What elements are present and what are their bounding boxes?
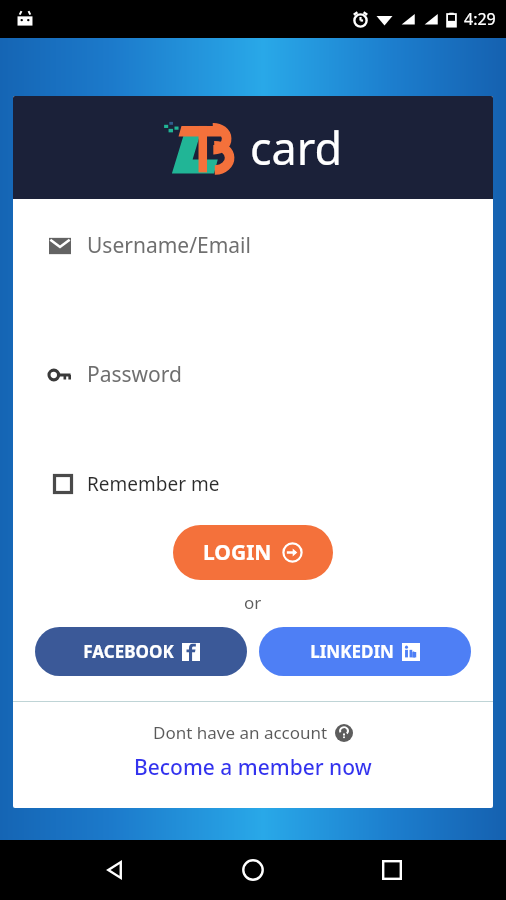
staticText: Username/Email: [87, 231, 251, 260]
button[interactable]: Recent apps: [368, 846, 416, 894]
button[interactable]: Password: [13, 356, 493, 393]
button[interactable]: Become a member now: [126, 751, 380, 784]
staticText: LINKEDIN: [310, 640, 394, 663]
staticText: Dont have an account: [153, 721, 328, 744]
button[interactable]: LINKEDIN: [259, 627, 471, 676]
button[interactable]: LOGIN: [173, 525, 333, 580]
staticText: Remember me: [87, 471, 220, 497]
staticText: FACEBOOK: [83, 640, 174, 663]
staticText: LOGIN: [203, 538, 272, 567]
staticText: 4:29: [464, 8, 496, 30]
staticText: Password: [87, 360, 182, 389]
staticText: or: [244, 591, 262, 614]
other: Help: [335, 724, 353, 742]
button[interactable]: Home: [229, 846, 277, 894]
button[interactable]: Back: [91, 846, 139, 894]
button[interactable]: FACEBOOK: [35, 627, 247, 676]
staticText: card: [250, 117, 343, 178]
button[interactable]: Username/Email: [13, 227, 493, 264]
staticText: Become a member now: [134, 753, 372, 782]
button[interactable]: Remember me: [49, 465, 224, 503]
